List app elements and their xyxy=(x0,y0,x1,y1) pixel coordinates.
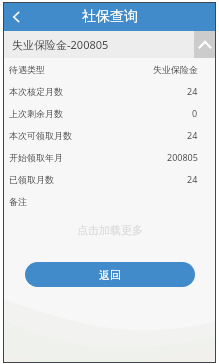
staticText: 0 xyxy=(192,107,198,119)
button[interactable]: 点击加载更多 xyxy=(4,212,215,248)
staticText: 已领取月数 xyxy=(9,174,54,185)
button[interactable]: 待遇类型 xyxy=(4,58,215,80)
staticText: 失业保险金 xyxy=(153,64,198,75)
button[interactable]: Back xyxy=(4,5,28,29)
staticText: 24 xyxy=(187,129,198,141)
button[interactable]: 已领取月数 xyxy=(4,168,215,190)
staticText: 社保查询 xyxy=(82,8,138,26)
staticText: 24 xyxy=(187,173,198,185)
button[interactable]: 开始领取年月 xyxy=(4,146,215,168)
staticText: 24 xyxy=(187,85,198,97)
staticText: 点击加载更多 xyxy=(77,223,143,237)
staticText: 200805 xyxy=(167,151,198,163)
button[interactable]: 本次核定月数 xyxy=(4,80,215,102)
staticText: 本次可领取月数 xyxy=(9,130,72,141)
staticText: 备注 xyxy=(9,196,27,207)
staticText: 返回 xyxy=(99,268,121,282)
staticText: 失业保险金-200805 xyxy=(12,37,109,52)
button[interactable]: Collapse xyxy=(194,31,215,58)
button[interactable]: 上次剩余月数 xyxy=(4,102,215,124)
button[interactable]: 本次可领取月数 xyxy=(4,124,215,146)
button[interactable]: 备注 xyxy=(4,190,215,212)
staticText: 上次剩余月数 xyxy=(9,108,63,119)
staticText: 开始领取年月 xyxy=(9,152,63,163)
staticText: 本次核定月数 xyxy=(9,86,63,97)
button[interactable]: 返回 xyxy=(25,262,195,287)
staticText: 待遇类型 xyxy=(9,64,45,75)
button[interactable]: 失业保险金-200805 xyxy=(4,31,215,58)
